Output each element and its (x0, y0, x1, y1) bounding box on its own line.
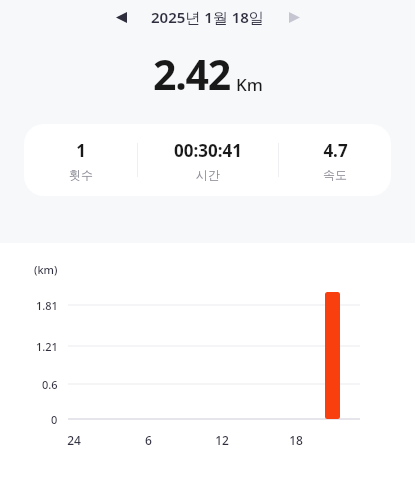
staticText: 1 (76, 139, 86, 162)
staticText: 0.6 (42, 377, 58, 392)
button[interactable]: 1 (24, 124, 391, 196)
staticText: 0 (51, 412, 58, 427)
staticText: 2.42 (153, 46, 231, 102)
staticText: 1.21 (36, 339, 58, 354)
staticText: Km (236, 73, 263, 96)
staticText: 6 (145, 432, 152, 448)
staticText: 12 (215, 432, 229, 448)
staticText: 1.81 (36, 298, 58, 313)
button[interactable]: Previous day (107, 3, 135, 31)
staticText: 2025년 1월 18일 (151, 7, 264, 27)
staticText: 횟수 (69, 167, 93, 182)
staticText: 시간 (196, 167, 220, 182)
staticText: 24 (67, 432, 81, 448)
button[interactable]: Next day (280, 3, 308, 31)
staticText: (km) (34, 262, 58, 277)
staticText: 4.7 (323, 139, 348, 162)
staticText: 속도 (323, 167, 347, 182)
staticText: 00:30:41 (174, 139, 242, 162)
staticText: 18 (289, 432, 303, 448)
